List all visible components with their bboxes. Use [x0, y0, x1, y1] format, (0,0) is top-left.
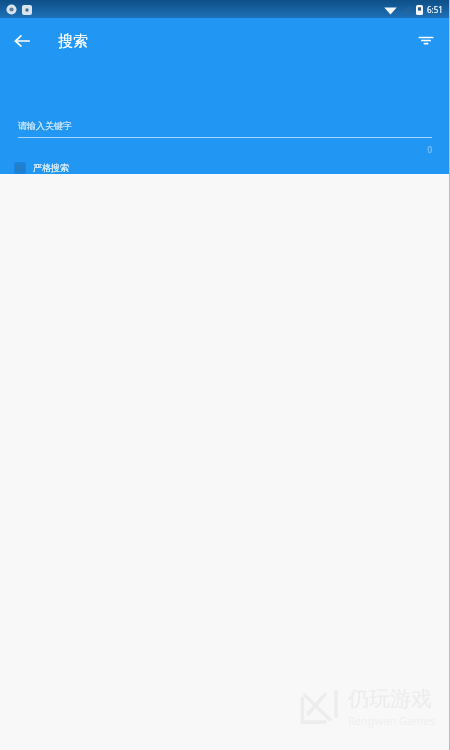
button[interactable]: 请输入关键字: [18, 112, 432, 138]
staticText: 6:51: [427, 4, 443, 15]
staticText: 严格搜索: [33, 162, 69, 173]
button[interactable]: Back: [4, 23, 40, 59]
staticText: 搜索: [58, 32, 88, 51]
button[interactable]: Filter: [408, 23, 444, 59]
button[interactable]: 严格搜索: [14, 161, 69, 174]
staticText: 请输入关键字: [18, 120, 72, 131]
staticText: 仍玩游戏: [348, 686, 432, 712]
staticText: 0: [427, 144, 432, 155]
